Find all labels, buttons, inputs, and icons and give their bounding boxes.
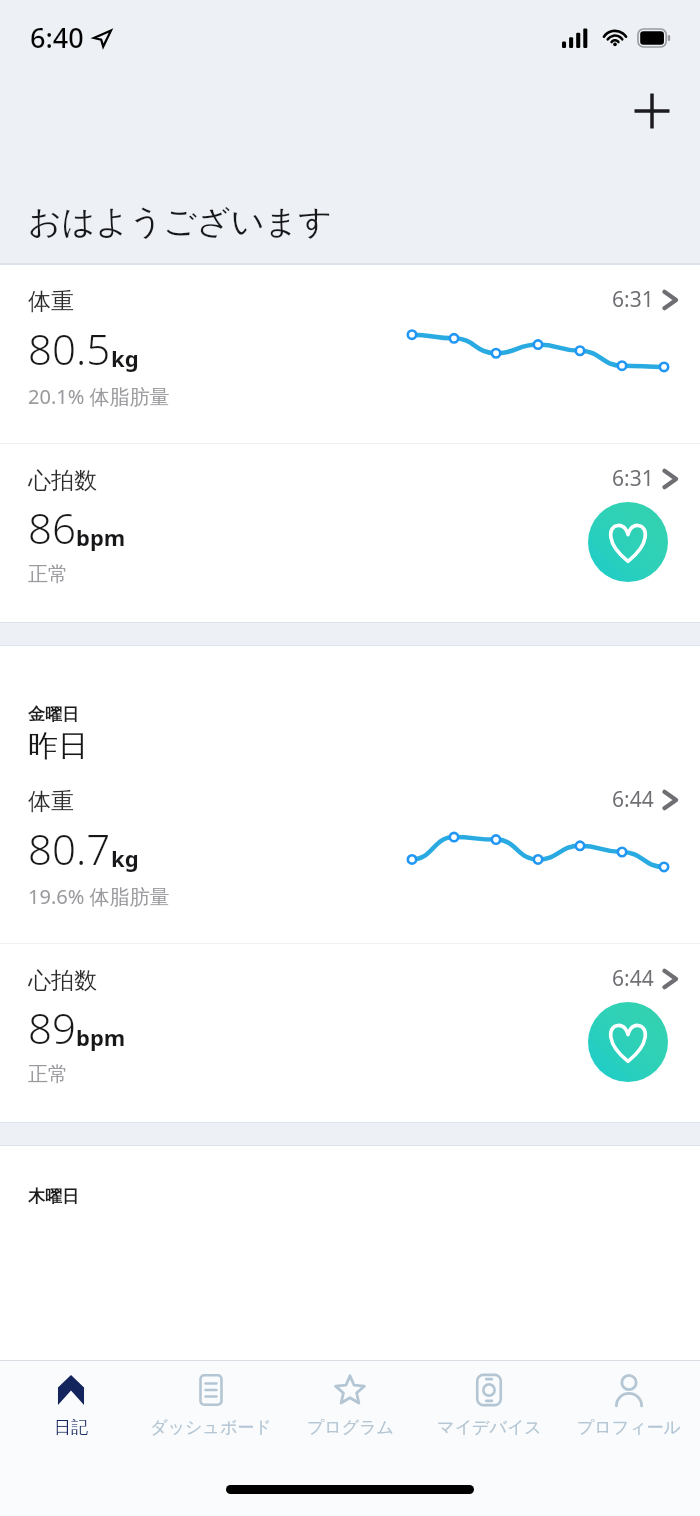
staticText: 80.7 <box>28 820 111 877</box>
button[interactable]: ダッシュボード <box>143 1361 279 1438</box>
button[interactable]: Add <box>622 81 682 141</box>
staticText: プログラム <box>307 1417 394 1438</box>
button[interactable]: 心拍数 <box>0 944 700 1122</box>
staticText: 日記 <box>54 1417 88 1438</box>
button[interactable]: プロフィール <box>561 1361 697 1438</box>
staticText: 89 <box>28 999 76 1056</box>
staticText: 6:44 <box>612 964 654 993</box>
staticText: 86 <box>28 499 76 556</box>
button[interactable]: プログラム <box>282 1361 418 1438</box>
staticText: 体重 <box>28 287 74 316</box>
staticText: 木曜日 <box>28 1186 79 1207</box>
staticText: kg <box>111 343 139 373</box>
staticText: 6:40 <box>30 19 84 56</box>
staticText: 正常 <box>28 1062 68 1087</box>
staticText: 心拍数 <box>28 466 97 495</box>
staticText: 20.1% 体脂肪量 <box>28 383 170 410</box>
staticText: 体重 <box>28 787 74 816</box>
staticText: おはようございます <box>28 201 332 243</box>
button[interactable]: マイデバイス <box>421 1361 557 1438</box>
staticText: 昨日 <box>28 727 88 765</box>
button[interactable]: 日記 <box>3 1361 139 1438</box>
staticText: 6:44 <box>612 785 654 814</box>
staticText: 6:31 <box>612 285 654 314</box>
staticText: 心拍数 <box>28 966 97 995</box>
staticText: 6:31 <box>612 464 654 493</box>
staticText: プロフィール <box>577 1417 681 1438</box>
button[interactable]: 体重 <box>0 265 700 443</box>
staticText: bpm <box>76 1022 126 1052</box>
staticText: 80.5 <box>28 320 111 377</box>
staticText: kg <box>111 843 139 873</box>
staticText: 正常 <box>28 562 68 587</box>
staticText: マイデバイス <box>437 1417 542 1438</box>
staticText: 19.6% 体脂肪量 <box>28 883 170 910</box>
button[interactable]: 体重 <box>0 765 700 943</box>
staticText: 金曜日 <box>28 704 79 725</box>
button[interactable]: 心拍数 <box>0 444 700 622</box>
staticText: bpm <box>76 522 126 552</box>
staticText: ダッシュボード <box>150 1417 272 1438</box>
